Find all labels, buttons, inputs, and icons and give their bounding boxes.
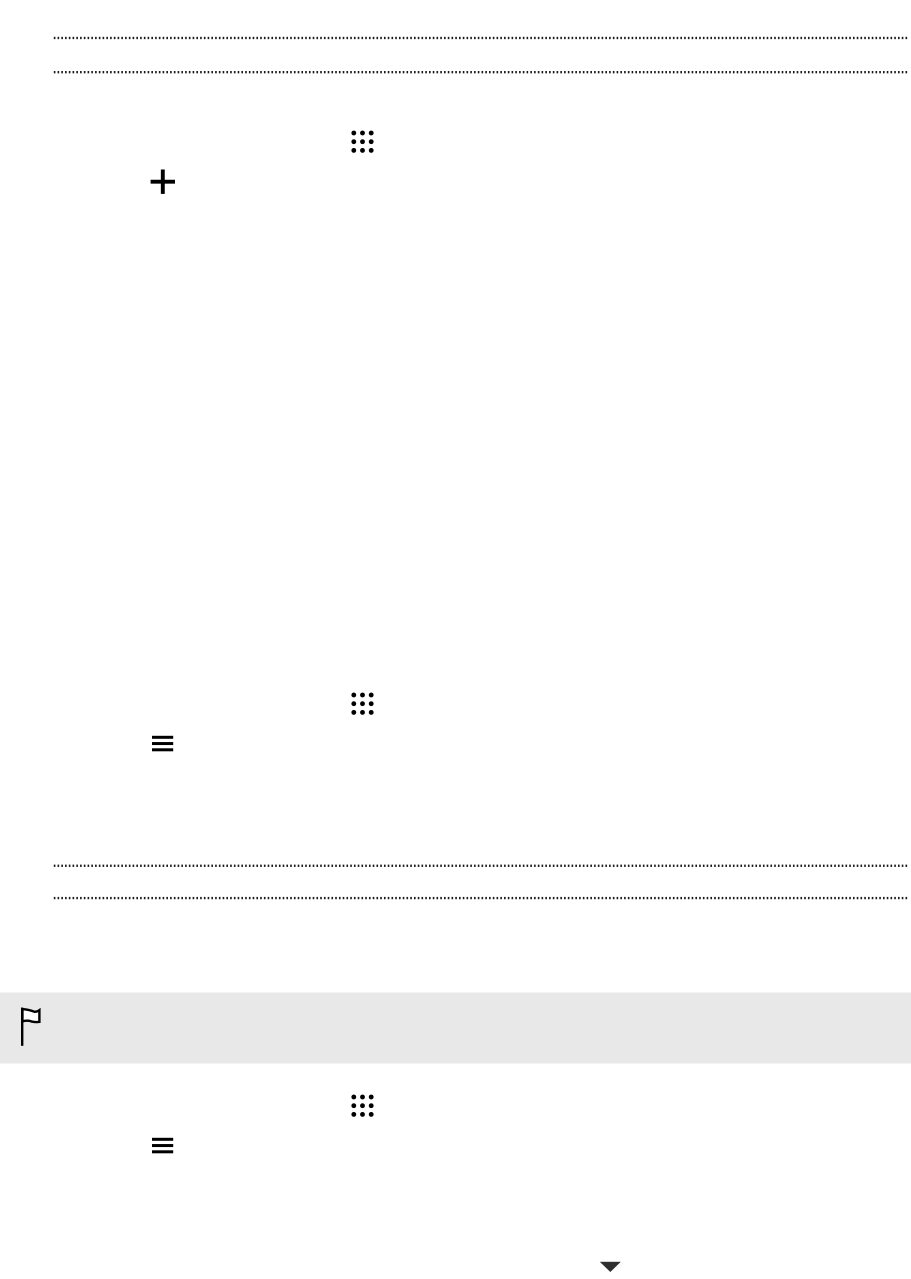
button[interactable]: Apps (351, 692, 374, 715)
button[interactable]: Apps (351, 1094, 374, 1117)
button[interactable]: Menu (152, 1138, 173, 1153)
button[interactable]: Flag (21, 1008, 41, 1046)
button[interactable]: Menu (152, 736, 173, 751)
button[interactable]: Apps (351, 130, 374, 153)
button[interactable]: Show more (600, 1262, 621, 1272)
button[interactable]: Add (151, 169, 175, 194)
